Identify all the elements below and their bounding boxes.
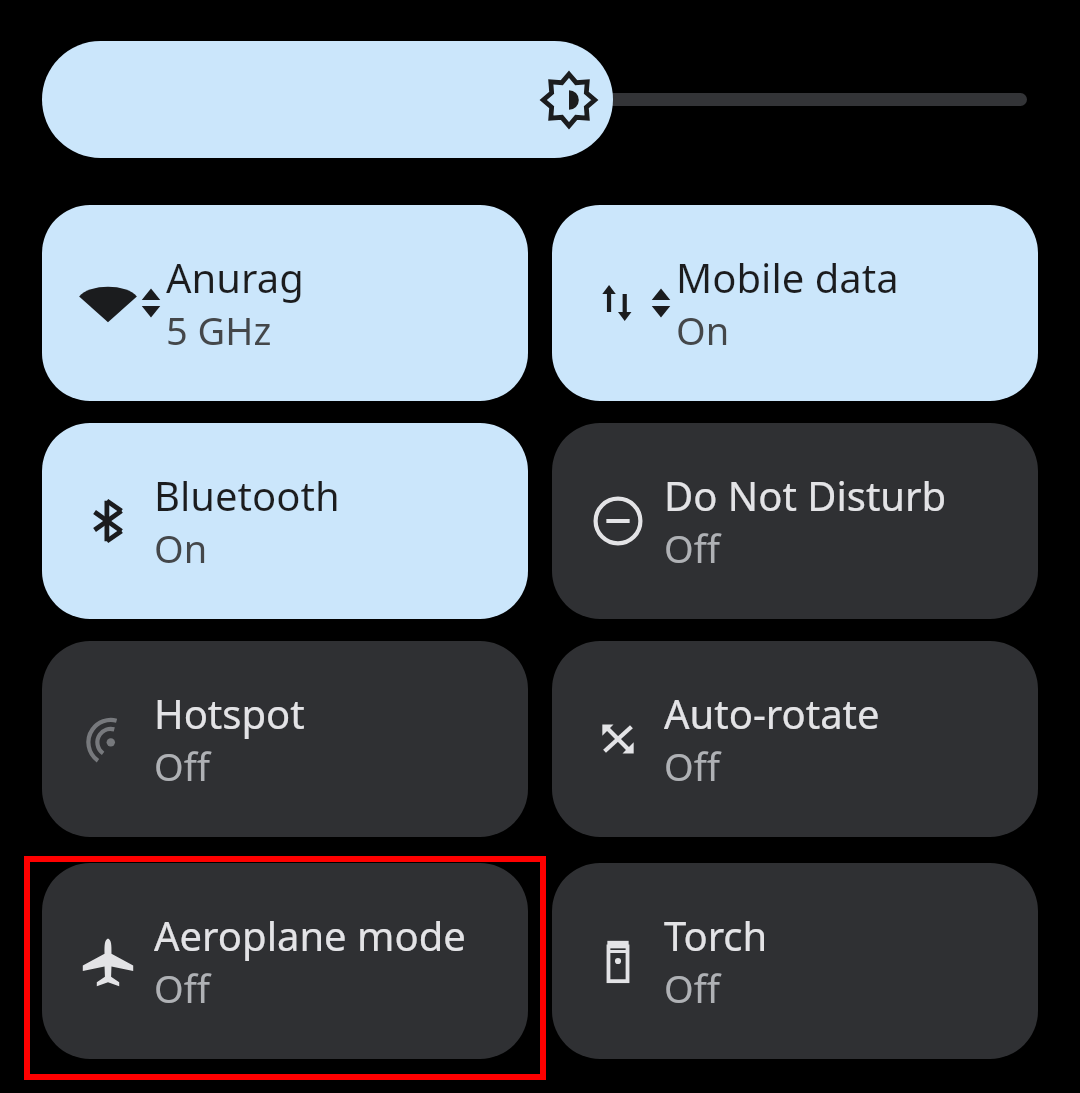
button[interactable]: Aeroplane mode — [42, 863, 528, 1059]
staticText: Off — [664, 962, 720, 1014]
staticText: On — [154, 522, 208, 574]
staticText: Off — [154, 740, 210, 792]
staticText: Hotspot — [154, 686, 305, 740]
staticText: Auto-rotate — [664, 686, 880, 740]
staticText: Anurag — [166, 250, 304, 304]
button[interactable]: Bluetooth — [42, 423, 528, 619]
button[interactable]: Hotspot — [42, 641, 528, 837]
button[interactable]: Mobile data — [552, 205, 1038, 401]
staticText: Off — [664, 740, 720, 792]
staticText: Off — [664, 522, 720, 574]
staticText: 5 GHz — [166, 304, 272, 356]
button[interactable]: Do Not Disturb — [552, 423, 1038, 619]
staticText: Bluetooth — [154, 468, 340, 522]
button[interactable]: Auto-rotate — [552, 641, 1038, 837]
staticText: Mobile data — [676, 250, 899, 304]
staticText: On — [676, 304, 730, 356]
staticText: Aeroplane mode — [154, 908, 466, 962]
button[interactable]: Anurag — [42, 205, 528, 401]
staticText: Torch — [664, 908, 768, 962]
button[interactable]: Torch — [552, 863, 1038, 1059]
staticText: Off — [154, 962, 210, 1014]
button[interactable]: Brightness — [42, 41, 1038, 158]
staticText: Do Not Disturb — [664, 468, 947, 522]
